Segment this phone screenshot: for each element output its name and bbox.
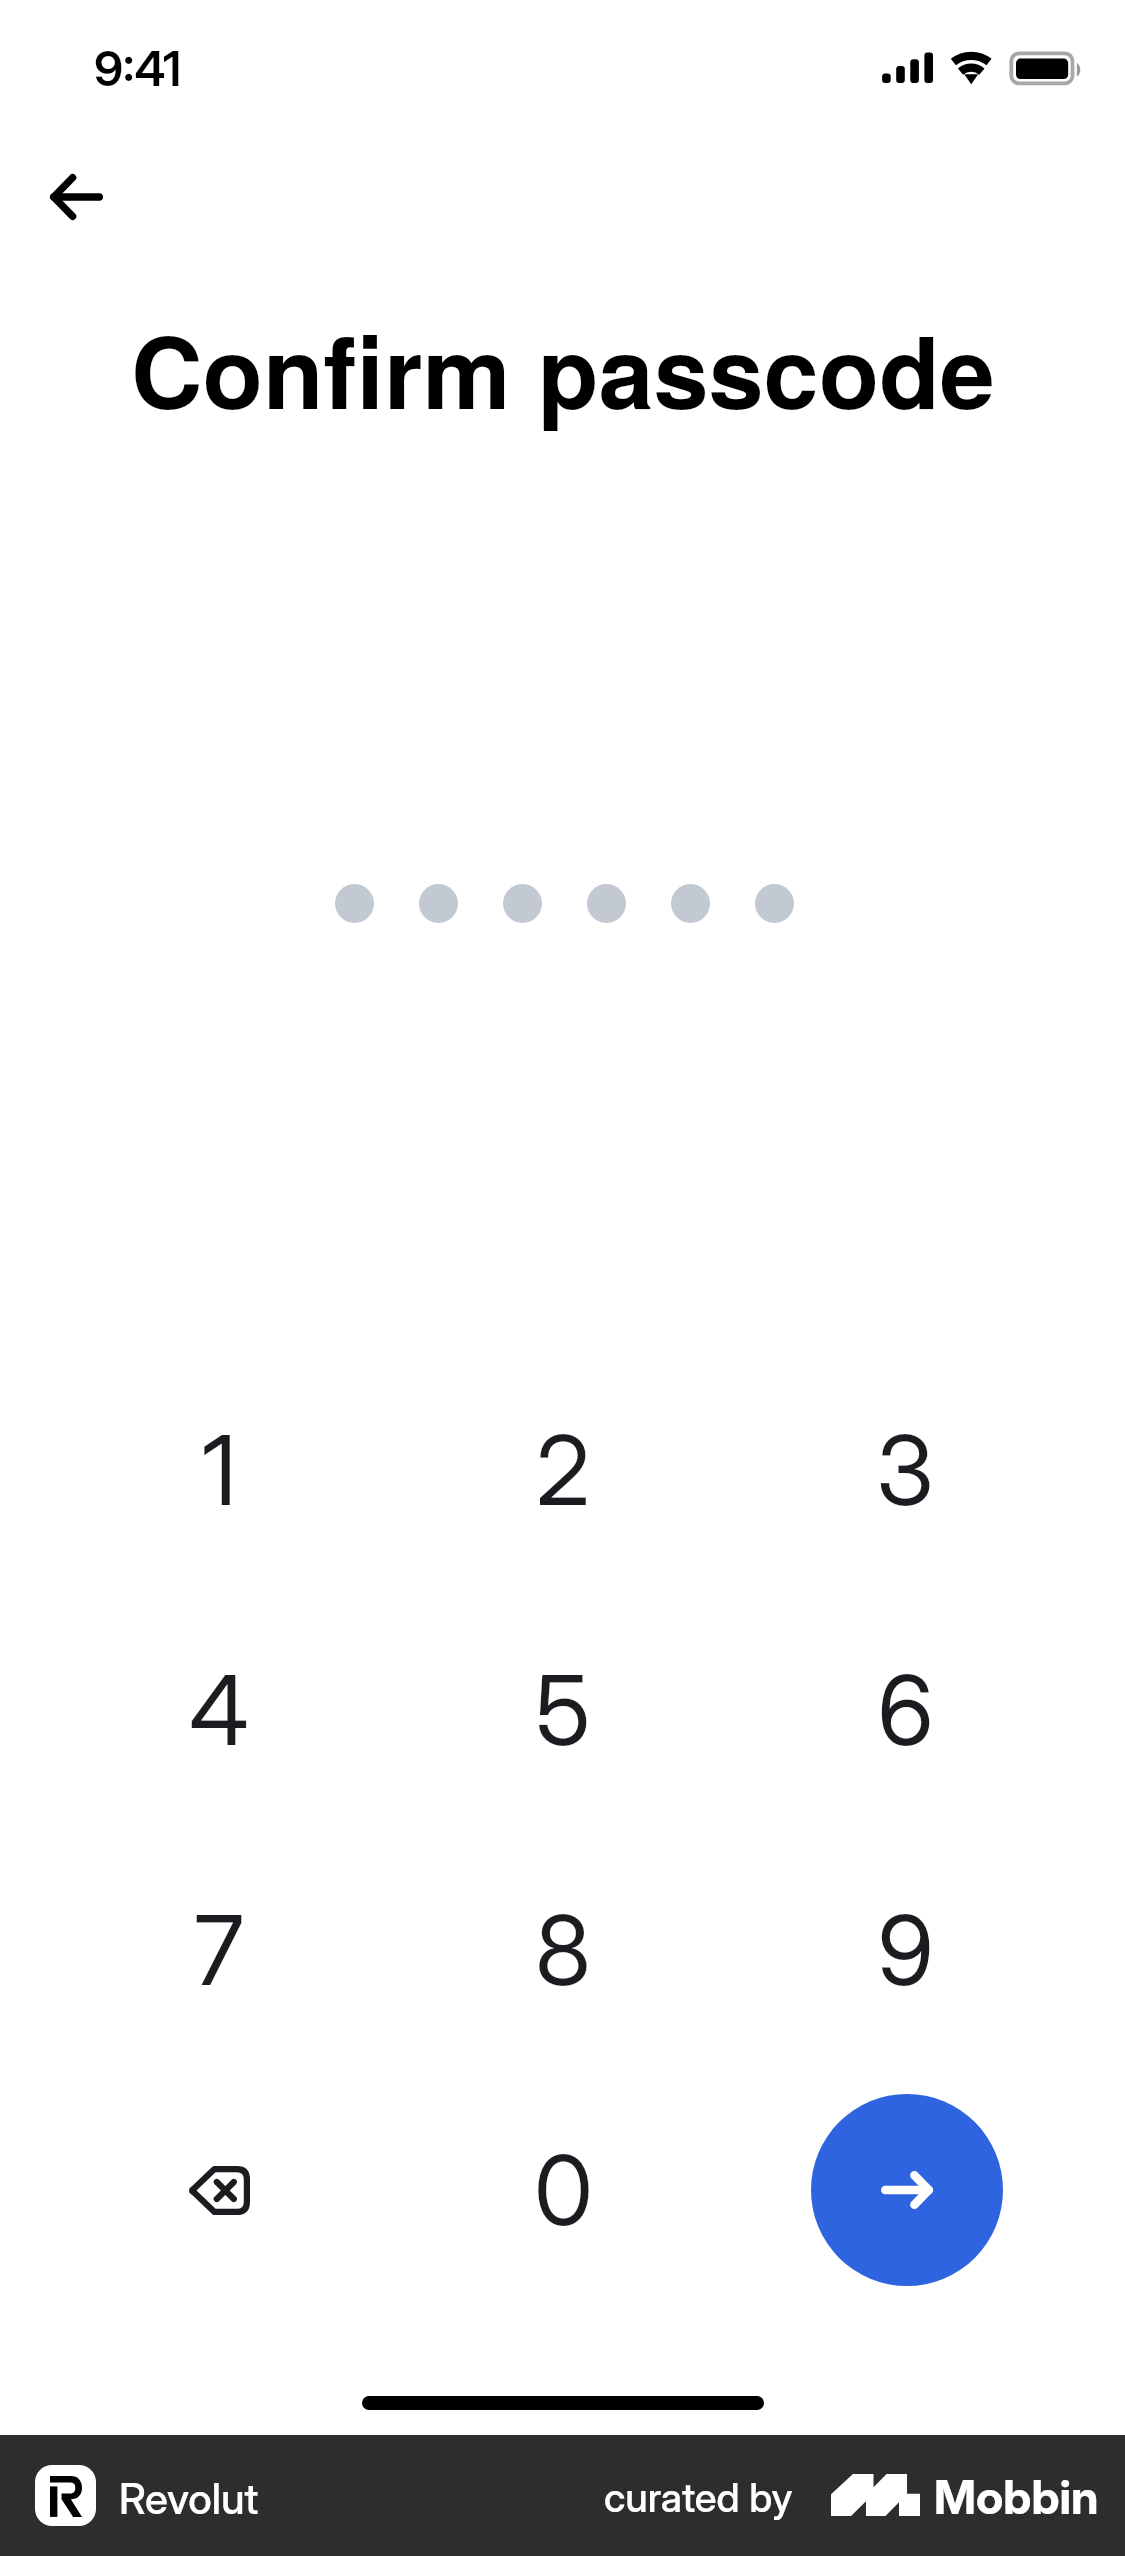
staticText: 5 [535, 1652, 591, 1768]
staticText: 9 [877, 1892, 934, 2008]
button[interactable]: 3 [800, 1374, 1010, 1566]
staticText: Revolut [119, 2473, 259, 2524]
staticText: 8 [535, 1892, 591, 2008]
button[interactable]: Continue [811, 2094, 1003, 2286]
button[interactable]: 6 [800, 1614, 1010, 1806]
button[interactable]: Back [28, 149, 124, 245]
staticText: 6 [877, 1652, 934, 1768]
button[interactable]: 1 [114, 1374, 324, 1566]
button[interactable]: 2 [458, 1374, 668, 1566]
staticText: Confirm passcode [131, 298, 995, 440]
button[interactable]: 5 [458, 1614, 668, 1806]
staticText: 2 [536, 1412, 590, 1528]
button[interactable]: 9 [800, 1854, 1010, 2046]
staticText: 7 [194, 1892, 244, 2008]
staticText: 4 [189, 1652, 249, 1768]
staticText: 0 [534, 2132, 593, 2248]
button[interactable]: 8 [458, 1854, 668, 2046]
staticText: 3 [876, 1412, 934, 1528]
staticText: curated by [604, 2473, 793, 2521]
button[interactable]: 7 [114, 1854, 324, 2046]
button[interactable]: 4 [114, 1614, 324, 1806]
staticText: Mobbin [934, 2468, 1099, 2525]
staticText: 9:41 [94, 39, 182, 97]
staticText: 1 [202, 1412, 237, 1528]
button[interactable]: Delete [114, 2094, 324, 2286]
button[interactable]: 0 [458, 2094, 668, 2286]
